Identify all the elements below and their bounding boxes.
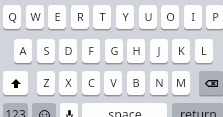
staticText: O (166, 9, 175, 24)
staticText: N (155, 75, 164, 90)
button[interactable]: P (206, 5, 223, 29)
staticText: B (132, 75, 140, 90)
staticText: G (110, 43, 119, 58)
button[interactable]: V (104, 71, 122, 95)
staticText: L (201, 43, 207, 58)
button[interactable]: L (195, 39, 213, 63)
button[interactable]: T (93, 5, 111, 29)
staticText: C (88, 75, 95, 90)
button[interactable]: B (127, 71, 145, 95)
button[interactable]: W (26, 5, 44, 29)
button[interactable]: A (14, 39, 32, 63)
button[interactable]: Shift (3, 71, 28, 95)
staticText: W (30, 9, 41, 24)
button[interactable]: space (82, 103, 167, 117)
staticText: I (191, 9, 195, 24)
button[interactable]: D (59, 39, 77, 63)
staticText: S (43, 43, 50, 58)
staticText: R (77, 9, 84, 24)
staticText: J (157, 43, 161, 58)
button[interactable]: J (150, 39, 168, 63)
button[interactable]: Dictation (60, 103, 78, 117)
button[interactable]: U (139, 5, 157, 29)
button[interactable]: I (184, 5, 202, 29)
button[interactable]: Emoji (32, 103, 56, 117)
staticText: Y (122, 9, 129, 24)
button[interactable]: Q (3, 5, 21, 29)
staticText: U (144, 9, 153, 24)
button[interactable]: Z (37, 71, 55, 95)
button[interactable]: Backspace (199, 71, 223, 95)
staticText: D (64, 43, 73, 58)
staticText: Q (8, 9, 17, 24)
staticText: P (212, 9, 219, 24)
button[interactable]: K (172, 39, 190, 63)
button[interactable]: F (82, 39, 100, 63)
button[interactable]: C (82, 71, 100, 95)
button[interactable]: O (161, 5, 179, 29)
staticText: F (88, 43, 94, 58)
button[interactable]: return (172, 103, 223, 117)
staticText: E (54, 9, 61, 24)
staticText: X (65, 75, 72, 90)
staticText: K (178, 43, 185, 58)
button[interactable]: H (127, 39, 145, 63)
staticText: H (132, 43, 141, 58)
button[interactable]: X (59, 71, 77, 95)
button[interactable]: N (150, 71, 168, 95)
button[interactable]: E (48, 5, 66, 29)
button[interactable]: R (71, 5, 89, 29)
staticText: T (99, 9, 106, 24)
button[interactable]: M (172, 71, 190, 95)
button[interactable]: Y (116, 5, 134, 29)
staticText: 123 (5, 106, 26, 117)
staticText: V (110, 75, 117, 90)
staticText: space (108, 106, 142, 117)
staticText: A (19, 43, 27, 58)
staticText: Z (43, 75, 50, 90)
staticText: return (180, 106, 217, 117)
button[interactable]: 123 (3, 103, 28, 117)
button[interactable]: S (37, 39, 55, 63)
staticText: M (176, 75, 186, 90)
button[interactable]: G (105, 39, 123, 63)
